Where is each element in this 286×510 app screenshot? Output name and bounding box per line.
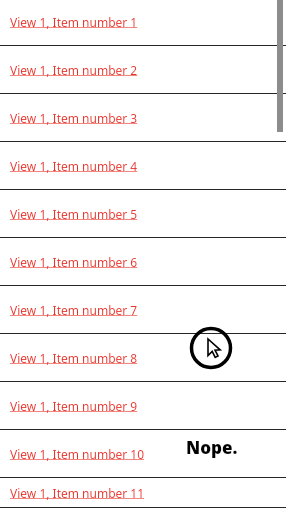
staticText: Nope. [185, 438, 237, 461]
staticText: View 1, Item number 5 [10, 206, 138, 222]
staticText: View 1, Item number 9 [10, 398, 138, 414]
button[interactable]: View 1, Item number 1 [0, 0, 286, 46]
staticText: Nope. [186, 438, 238, 461]
staticText: Nope. [186, 437, 238, 460]
staticText: View 1, Item number 3 [10, 110, 138, 126]
staticText: Nope. [188, 436, 240, 459]
staticText: Nope. [185, 437, 237, 460]
staticText: Nope. [185, 436, 237, 459]
staticText: Nope. [188, 438, 240, 461]
staticText: Nope. [184, 437, 236, 460]
button[interactable]: View 1, Item number 8 [0, 334, 286, 382]
staticText: View 1, Item number 6 [10, 254, 138, 270]
button[interactable]: View 1, Item number 9 [0, 382, 286, 430]
staticText: Nope. [184, 436, 236, 459]
button[interactable]: View 1, Item number 11 [0, 478, 286, 508]
button[interactable]: View 1, Item number 5 [0, 190, 286, 238]
button[interactable]: View 1, Item number 6 [0, 238, 286, 286]
staticText: Nope. [187, 434, 239, 457]
staticText: View 1, Item number 11 [10, 485, 145, 501]
staticText: View 1, Item number 1 [10, 14, 138, 30]
staticText: View 1, Item number 7 [10, 302, 138, 318]
staticText: View 1, Item number 8 [10, 350, 138, 366]
staticText: Nope. [184, 435, 236, 458]
staticText: Nope. [188, 434, 240, 457]
staticText: Nope. [186, 435, 238, 458]
staticText: View 1, Item number 2 [10, 62, 138, 78]
staticText: Nope. [187, 438, 239, 461]
staticText: View 1, Item number 4 [10, 158, 138, 174]
other: Touch indicator [189, 326, 233, 370]
staticText: Nope. [187, 435, 239, 458]
button[interactable]: View 1, Item number 4 [0, 142, 286, 190]
staticText: Nope. [186, 434, 238, 457]
staticText: Nope. [185, 435, 237, 458]
staticText: Nope. [186, 436, 238, 459]
staticText: Nope. [187, 436, 239, 459]
button[interactable]: View 1, Item number 7 [0, 286, 286, 334]
staticText: Nope. [187, 437, 239, 460]
button[interactable]: View 1, Item number 3 [0, 94, 286, 142]
staticText: Nope. [184, 438, 236, 461]
button[interactable]: View 1, Item number 10 [0, 430, 286, 478]
staticText: Nope. [185, 434, 237, 457]
staticText: View 1, Item number 10 [10, 446, 145, 462]
staticText: Nope. [184, 434, 236, 457]
staticText: Nope. [188, 435, 240, 458]
button[interactable]: View 1, Item number 2 [0, 46, 286, 94]
staticText: Nope. [188, 437, 240, 460]
